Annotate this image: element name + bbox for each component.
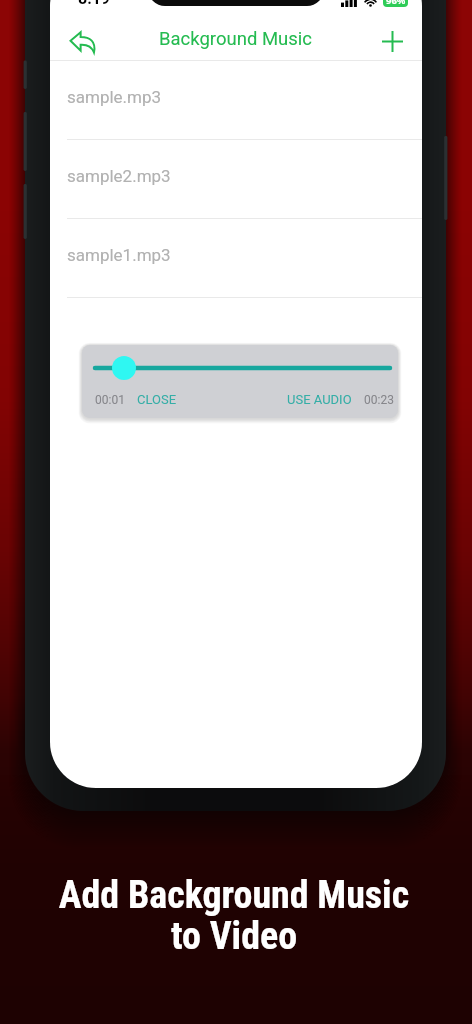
button[interactable]: USE AUDIO — [287, 392, 352, 407]
staticText: 8:19 — [78, 0, 111, 8]
staticText: sample.mp3 — [67, 87, 162, 107]
staticText: USE AUDIO — [287, 392, 352, 407]
staticText: Background Music — [159, 28, 313, 50]
staticText: 96% — [386, 0, 406, 7]
button[interactable]: sample2.mp3 — [50, 140, 422, 219]
button[interactable]: Add — [368, 17, 412, 61]
button[interactable]: Back — [58, 15, 106, 63]
staticText: 00:01 — [95, 393, 125, 407]
button[interactable]: CLOSE — [137, 392, 177, 407]
staticText: Add Background Music to Video — [0, 873, 470, 958]
staticText: CLOSE — [137, 392, 177, 407]
staticText: sample2.mp3 — [67, 166, 171, 186]
button[interactable]: sample1.mp3 — [50, 219, 422, 298]
staticText: sample1.mp3 — [67, 245, 171, 265]
staticText: 00:23 — [364, 393, 394, 407]
button[interactable]: sample.mp3 — [50, 61, 422, 140]
